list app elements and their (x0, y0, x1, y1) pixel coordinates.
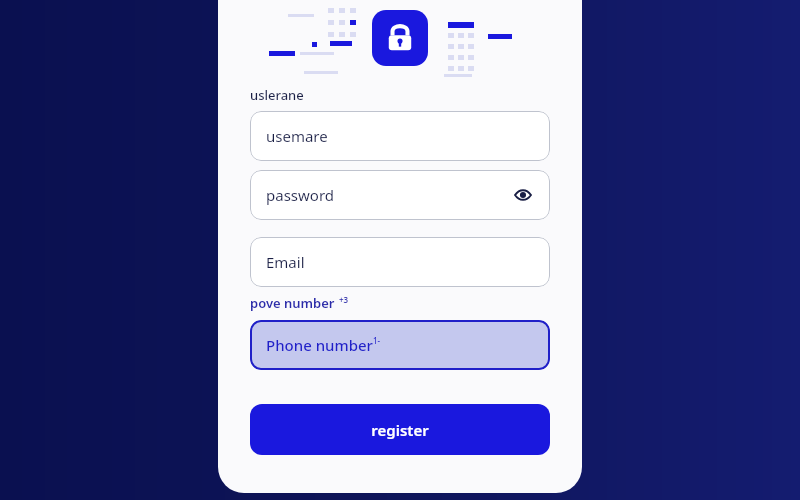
staticText: uslerane (250, 86, 304, 104)
staticText: register (371, 420, 429, 440)
other: Secure registration (372, 10, 428, 66)
button[interactable]: register (250, 404, 550, 455)
staticText: pove number (250, 294, 335, 312)
staticText: usemare (266, 126, 328, 146)
staticText: +3 (339, 294, 349, 305)
button[interactable]: Toggle password visibility (512, 184, 534, 206)
button[interactable]: password (250, 170, 550, 220)
button[interactable]: Email (250, 237, 550, 287)
staticText: Email (266, 252, 305, 272)
button[interactable]: usemare (250, 111, 550, 161)
staticText: 1- (373, 335, 381, 346)
staticText: Phone number (266, 335, 373, 355)
staticText: password (266, 185, 334, 205)
button[interactable]: Phone number (250, 320, 550, 370)
